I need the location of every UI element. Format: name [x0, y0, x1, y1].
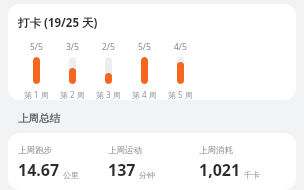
button[interactable]: 5/5	[18, 41, 54, 100]
staticText: 第 5 周	[168, 89, 193, 100]
staticText: 上周消耗	[199, 145, 233, 156]
staticText: 千卡	[244, 170, 260, 180]
staticText: 2/5	[102, 41, 115, 53]
staticText: 4/5	[174, 41, 187, 53]
button[interactable]: 4/5	[162, 41, 198, 100]
staticText: 上周跑步	[18, 145, 52, 156]
staticText: 第 2 周	[60, 89, 85, 100]
staticText: 公里	[63, 170, 79, 180]
staticText: 第 3 周	[96, 89, 121, 100]
staticText: 第 1 周	[24, 89, 49, 100]
staticText: 137	[108, 159, 136, 181]
staticText: 1,021	[199, 159, 241, 181]
staticText: 打卡 (19/25 天)	[18, 15, 98, 31]
button[interactable]: 3/5	[54, 41, 90, 100]
button[interactable]: 5/5	[126, 41, 162, 100]
staticText: 5/5	[138, 41, 151, 53]
staticText: 3/5	[66, 41, 79, 53]
button[interactable]: 2/5	[90, 41, 126, 100]
staticText: 上周运动	[108, 145, 142, 156]
staticText: 5/5	[30, 41, 43, 53]
button[interactable]: 上周运动	[108, 145, 199, 181]
button[interactable]: 打卡 (19/25 天)	[8, 4, 296, 100]
button[interactable]: 上周跑步	[8, 133, 296, 190]
button[interactable]: 上周消耗	[199, 145, 290, 181]
staticText: 分钟	[139, 170, 155, 180]
staticText: 14.67	[18, 159, 60, 181]
staticText: 第 4 周	[132, 89, 157, 100]
button[interactable]: 上周跑步	[18, 145, 108, 181]
staticText: 上周总结	[18, 112, 60, 125]
